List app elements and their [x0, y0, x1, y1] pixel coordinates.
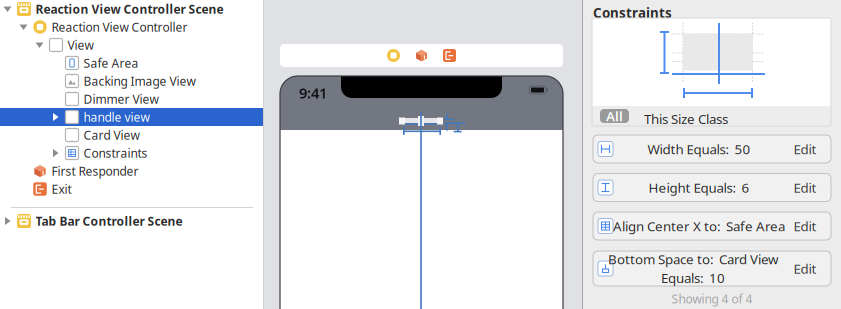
button[interactable]: Align Center X to:: [593, 212, 831, 240]
button[interactable]: Constraints: [0, 144, 264, 162]
button[interactable]: Width Equals:: [593, 135, 831, 163]
staticText: Align Center X to:: [613, 217, 721, 235]
staticText: Height Equals:: [648, 179, 736, 196]
staticText: Tab Bar Controller Scene: [35, 213, 182, 229]
staticText: Constraints: [83, 145, 147, 161]
button[interactable]: Reaction View Controller Scene: [0, 0, 264, 18]
staticText: Exit: [51, 181, 71, 197]
staticText: Showing 4 of 4: [671, 291, 752, 307]
staticText: 9:41: [299, 83, 327, 102]
staticText: Width Equals:: [647, 140, 729, 158]
button[interactable]: View Controller: [386, 46, 401, 65]
staticText: Edit: [793, 179, 816, 196]
button[interactable]: Height Equals:: [593, 173, 831, 201]
staticText: This Size Class: [644, 110, 728, 128]
staticText: Safe Area: [83, 55, 138, 71]
staticText: Safe Area: [726, 217, 785, 235]
button[interactable]: Bottom Space to:: [593, 251, 831, 286]
button[interactable]: First Responder: [0, 162, 264, 180]
button[interactable]: Exit: [442, 46, 457, 65]
button[interactable]: Tab Bar Controller Scene: [0, 212, 264, 230]
button[interactable]: Card View: [0, 126, 264, 144]
staticText: 10: [709, 269, 725, 287]
button[interactable]: handle view: [0, 108, 264, 126]
staticText: Reaction View Controller: [51, 19, 187, 35]
button[interactable]: Exit: [0, 180, 264, 198]
button[interactable]: Dimmer View: [0, 90, 264, 108]
staticText: Edit: [793, 140, 816, 158]
staticText: Backing Image View: [83, 73, 195, 89]
button[interactable]: Backing Image View: [0, 72, 264, 90]
staticText: Card View: [83, 127, 139, 143]
button[interactable]: Reaction View Controller: [0, 18, 264, 36]
button[interactable]: All: [600, 109, 629, 123]
staticText: Constraints: [593, 4, 672, 22]
staticText: Dimmer View: [83, 91, 158, 107]
staticText: First Responder: [51, 163, 138, 179]
button[interactable]: View: [0, 36, 264, 54]
staticText: 50: [734, 140, 750, 158]
staticText: Bottom Space to:: [608, 250, 714, 268]
staticText: handle view: [83, 109, 149, 125]
staticText: Edit: [793, 260, 816, 277]
staticText: Reaction View Controller Scene: [35, 1, 223, 17]
staticText: Card View: [719, 250, 778, 268]
staticText: Equals:: [661, 269, 704, 287]
staticText: View: [67, 37, 93, 53]
button[interactable]: First Responder: [414, 46, 429, 65]
staticText: All: [606, 107, 623, 125]
button[interactable]: Safe Area: [0, 54, 264, 72]
staticText: 6: [741, 179, 749, 196]
staticText: Edit: [793, 217, 816, 235]
